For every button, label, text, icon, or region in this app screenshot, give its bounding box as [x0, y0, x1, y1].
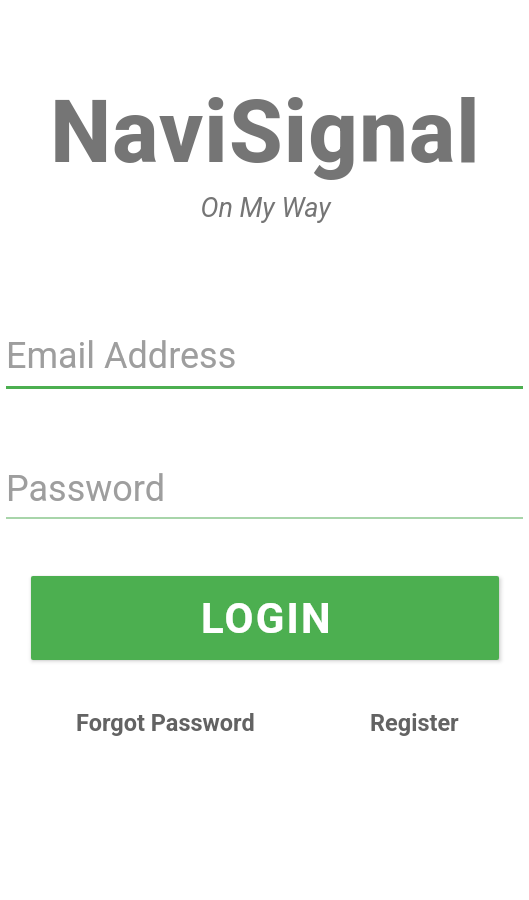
staticText: Email Address — [6, 335, 237, 377]
staticText: Forgot Password — [76, 709, 255, 737]
staticText: LOGIN — [201, 594, 333, 643]
button[interactable]: Password input field — [0, 453, 529, 520]
staticText: Password — [6, 468, 166, 510]
staticText: Register — [370, 709, 459, 737]
staticText: On My Way — [1, 192, 529, 224]
button[interactable]: Email Address input field — [0, 321, 529, 389]
button[interactable]: Forgot Password — [64, 701, 267, 745]
button[interactable]: Register — [358, 701, 471, 745]
staticText: NaviSignal — [1, 82, 529, 183]
button[interactable]: LOGIN — [31, 576, 499, 660]
